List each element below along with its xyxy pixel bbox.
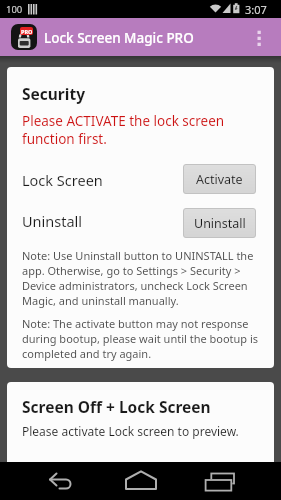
staticText: Uninstall [194, 215, 246, 232]
button[interactable] [200, 468, 240, 494]
staticText: Activate [196, 171, 243, 188]
button[interactable] [44, 468, 80, 494]
staticText: Security [22, 83, 86, 104]
button[interactable] [122, 468, 160, 494]
staticText: Lock Screen [22, 170, 103, 190]
button[interactable] [246, 18, 281, 56]
staticText: PRO [21, 28, 33, 35]
staticText: Uninstall [22, 211, 83, 231]
button[interactable]: PRO [11, 24, 37, 50]
staticText: Please ACTIVATE the lock screen function… [22, 112, 225, 148]
staticText: 3:07 [245, 2, 267, 17]
button[interactable]: Uninstall [183, 208, 256, 238]
staticText: 100 [6, 3, 23, 16]
staticText: Lock Screen Magic PRO [44, 29, 194, 47]
staticText: Note: The activate button may not respon… [22, 316, 259, 361]
button[interactable]: Activate [183, 164, 256, 194]
staticText: Please activate Lock screen to preview. [22, 423, 239, 439]
staticText: Note: Use Uninstall button to UNINSTALL … [22, 248, 254, 308]
staticText: Screen Off + Lock Screen [22, 396, 211, 417]
